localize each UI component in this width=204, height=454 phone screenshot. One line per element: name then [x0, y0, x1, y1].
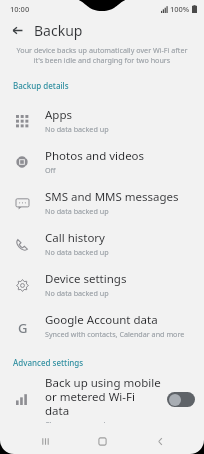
button[interactable]: G	[0, 305, 204, 346]
staticText: No data backed up	[45, 206, 109, 216]
staticText: Call history	[45, 230, 105, 246]
button[interactable]: Device settings	[0, 264, 204, 305]
staticText: 10:00	[10, 4, 30, 14]
staticText: Off	[45, 165, 56, 175]
staticText: Device settings	[45, 271, 127, 287]
button[interactable]: Back up using mobile data toggle	[167, 392, 195, 407]
button[interactable]: Back	[6, 19, 28, 41]
staticText: No data backed up	[45, 124, 109, 134]
staticText: Advanced settings	[13, 357, 84, 368]
staticText: Synced with contacts, Calendar and more	[45, 329, 185, 339]
staticText: Charges may apply	[45, 419, 110, 423]
staticText: Your device backs up automatically over …	[16, 45, 188, 65]
button[interactable]: Apps	[0, 100, 204, 141]
staticText: Google Account data	[45, 312, 158, 328]
staticText: SMS and MMS messages	[45, 189, 179, 205]
button[interactable]: Call history	[0, 223, 204, 264]
staticText: Back up using mobile or metered Wi-Fi da…	[45, 375, 161, 418]
staticText: Backup details	[13, 80, 69, 91]
staticText: Photos and videos	[45, 148, 145, 164]
button[interactable]: Back	[147, 428, 173, 454]
button[interactable]: SMS and MMS messages	[0, 182, 204, 223]
staticText: No data backed up	[45, 247, 109, 257]
staticText: G	[18, 319, 28, 334]
staticText: 100%	[170, 4, 190, 14]
button[interactable]: Home	[89, 428, 115, 454]
staticText: No data backed up	[45, 288, 109, 298]
staticText: Apps	[45, 107, 73, 123]
button[interactable]: Photos and videos	[0, 141, 204, 182]
button[interactable]: Recents	[32, 428, 58, 454]
button[interactable]: Back up using mobile or metered Wi-Fi da…	[0, 375, 204, 423]
staticText: Backup	[34, 21, 83, 40]
